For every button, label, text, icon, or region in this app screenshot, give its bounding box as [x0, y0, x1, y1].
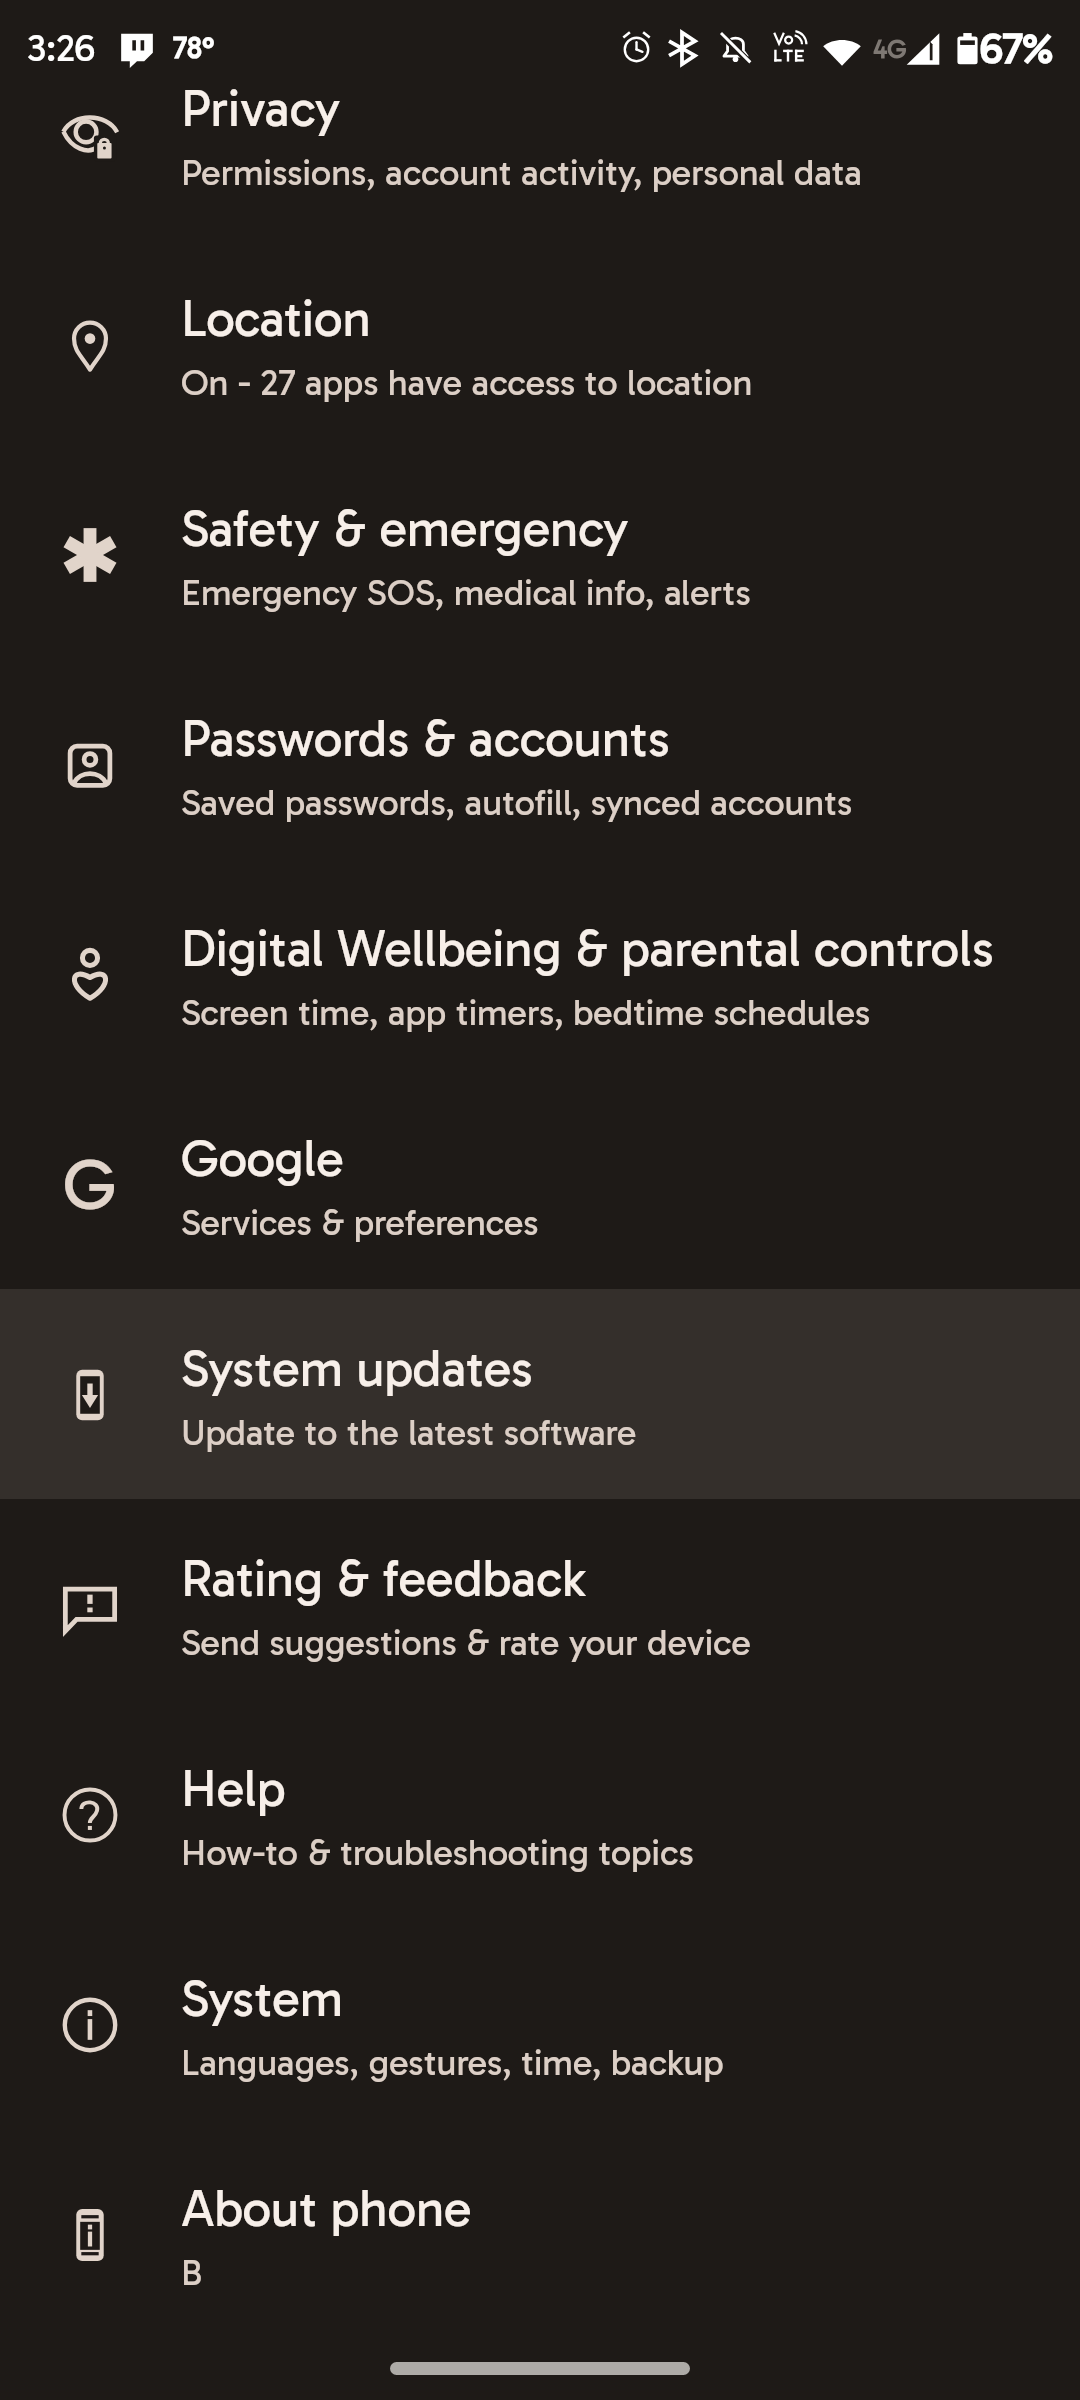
- staticText: Services & preferences: [181, 1201, 539, 1244]
- other: Bluetooth on: [664, 30, 700, 66]
- staticText: 3:26: [27, 25, 95, 71]
- staticText: Emergency SOS, medical info, alerts: [181, 571, 751, 614]
- staticText: 78°: [173, 31, 215, 66]
- staticText: Permissions, account activity, personal …: [181, 151, 862, 194]
- other: Battery 67 percent: [957, 32, 978, 67]
- staticText: Safety & emergency: [181, 498, 629, 559]
- button[interactable]: About phone: [0, 2129, 1080, 2339]
- staticText: Languages, gestures, time, backup: [181, 2041, 724, 2084]
- button[interactable]: System: [0, 1919, 1080, 2129]
- staticText: Privacy: [181, 78, 341, 139]
- staticText: 67%: [980, 24, 1053, 74]
- button[interactable]: Passwords & accounts: [0, 659, 1080, 869]
- other: Alarm set: [620, 31, 653, 64]
- staticText: Update to the latest software: [181, 1411, 637, 1454]
- staticText: Saved passwords, autofill, synced accoun…: [181, 781, 853, 824]
- staticText: Google: [181, 1128, 344, 1189]
- button[interactable]: Location: [0, 239, 1080, 449]
- staticText: Help: [181, 1758, 286, 1819]
- staticText: About phone: [181, 2178, 472, 2239]
- other: VoLTE: [772, 29, 809, 66]
- staticText: Screen time, app timers, bedtime schedul…: [181, 991, 871, 1034]
- staticText: Passwords & accounts: [181, 708, 670, 769]
- staticText: System updates: [181, 1338, 533, 1399]
- staticText: B: [181, 2251, 203, 2294]
- staticText: How-to & troubleshooting topics: [181, 1831, 694, 1874]
- button[interactable]: Safety & emergency: [0, 449, 1080, 659]
- button[interactable]: Digital Wellbeing & parental controls: [0, 869, 1080, 1079]
- staticText: Rating & feedback: [181, 1548, 586, 1609]
- other: Notifications silenced: [719, 31, 752, 64]
- staticText: Digital Wellbeing & parental controls: [181, 918, 994, 979]
- button[interactable]: Privacy: [0, 29, 1080, 239]
- button[interactable]: Help: [0, 1709, 1080, 1919]
- other: Twitch notification: [119, 30, 155, 68]
- staticText: System: [181, 1968, 343, 2029]
- staticText: Send suggestions & rate your device: [181, 1621, 751, 1664]
- button[interactable]: System updates: [0, 1289, 1080, 1499]
- staticText: Location: [181, 288, 371, 349]
- staticText: On - 27 apps have access to location: [181, 361, 753, 404]
- button[interactable]: Rating & feedback: [0, 1499, 1080, 1709]
- staticText: 4G: [873, 34, 907, 65]
- staticText: G: [63, 1141, 116, 1227]
- other: Wi-Fi signal full: [822, 33, 862, 63]
- other: Mobile signal: [906, 32, 940, 66]
- button[interactable]: G: [0, 1079, 1080, 1289]
